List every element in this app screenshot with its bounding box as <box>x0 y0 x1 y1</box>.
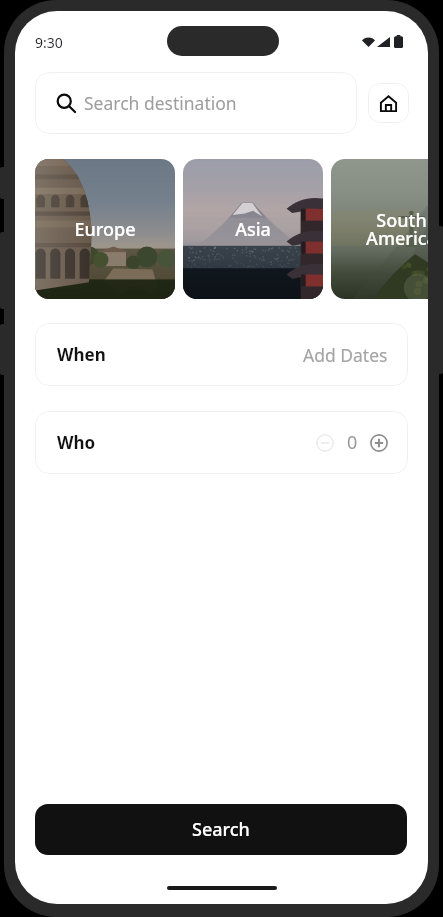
button[interactable]: Decrease guests <box>313 431 337 455</box>
staticText: Who <box>57 431 96 454</box>
staticText: Search destination <box>84 91 237 115</box>
button[interactable]: Search <box>35 804 407 855</box>
staticText: Europe <box>74 217 136 242</box>
button[interactable]: Asia <box>183 159 323 299</box>
button[interactable]: Search destination <box>35 72 357 134</box>
button[interactable]: When <box>35 323 408 386</box>
staticText: 0 <box>347 430 358 455</box>
button[interactable]: Increase guests <box>367 431 391 455</box>
button[interactable]: Home <box>368 83 409 123</box>
staticText: Add Dates <box>303 343 388 367</box>
button[interactable]: Europe <box>35 159 175 299</box>
staticText: 9:30 <box>35 33 63 52</box>
button[interactable]: South America <box>331 159 428 299</box>
staticText: Asia <box>235 217 271 242</box>
staticText: Search <box>192 817 250 842</box>
staticText: When <box>57 343 106 366</box>
staticText: South America <box>366 208 428 250</box>
